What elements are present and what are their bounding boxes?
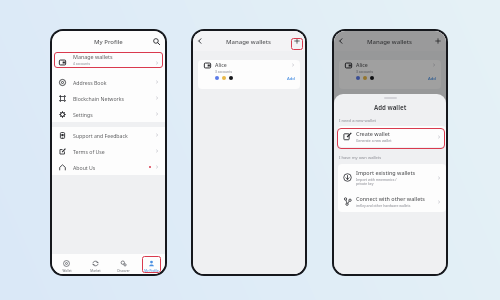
button[interactable]: Address Book — [52, 74, 165, 90]
staticText: Address Book — [73, 79, 107, 86]
button[interactable]: Add wallet — [292, 36, 302, 46]
button[interactable]: Back — [336, 36, 346, 46]
staticText: imKey and other hardware wallets — [356, 203, 436, 208]
staticText: Blockchain Networks — [73, 95, 124, 102]
staticText: Discover — [117, 269, 130, 273]
button[interactable]: Alice — [198, 60, 300, 89]
staticText: Create wallet — [356, 130, 390, 137]
staticText: Alice — [215, 61, 227, 68]
staticText: My Profile — [144, 269, 159, 273]
button[interactable]: My Profile — [137, 254, 165, 274]
staticText: I have my own wallets — [339, 155, 382, 161]
staticText: Manage wallets — [73, 53, 113, 60]
button[interactable]: About Us — [52, 159, 165, 175]
button[interactable]: Import existing wallets — [338, 164, 446, 191]
staticText: Settings — [73, 111, 93, 118]
staticText: Add — [287, 76, 295, 82]
button[interactable]: Add wallet — [433, 36, 443, 46]
button[interactable]: Discover — [109, 254, 137, 274]
button[interactable]: Alice — [339, 60, 441, 89]
staticText: Import with mnemonics / private key — [356, 177, 406, 186]
staticText: Terms of Use — [73, 148, 105, 155]
staticText: Add wallet — [374, 103, 407, 111]
staticText: Market — [90, 269, 101, 273]
staticText: Connect with other wallets — [356, 195, 425, 202]
button[interactable]: Search — [151, 36, 161, 46]
staticText: I need a new wallet — [339, 118, 376, 124]
button[interactable]: Blockchain Networks — [52, 90, 165, 106]
staticText: Alice — [356, 61, 368, 68]
button[interactable]: Support and Feedback — [52, 127, 165, 143]
staticText: About Us — [73, 164, 96, 171]
button[interactable]: Market — [81, 254, 109, 274]
button[interactable]: Terms of Use — [52, 143, 165, 159]
staticText: Generate a new wallet — [356, 138, 436, 143]
staticText: Support and Feedback — [73, 132, 128, 139]
button[interactable]: Manage wallets — [52, 51, 165, 74]
staticText: Add — [428, 76, 436, 82]
staticText: 3 accounts — [215, 69, 233, 74]
button[interactable]: Settings — [52, 106, 165, 122]
staticText: Manage wallets — [226, 38, 272, 46]
staticText: Import existing wallets — [356, 169, 416, 176]
button[interactable]: Connect with other wallets — [338, 191, 446, 212]
button[interactable]: Back — [195, 36, 205, 46]
staticText: Manage wallets — [367, 38, 413, 46]
staticText: Wallet — [62, 269, 72, 273]
staticText: My Profile — [94, 38, 123, 46]
staticText: 4 accounts — [73, 61, 91, 66]
staticText: 3 accounts — [356, 69, 374, 74]
button[interactable]: Create wallet — [338, 126, 446, 147]
button[interactable]: Wallet — [52, 254, 81, 274]
